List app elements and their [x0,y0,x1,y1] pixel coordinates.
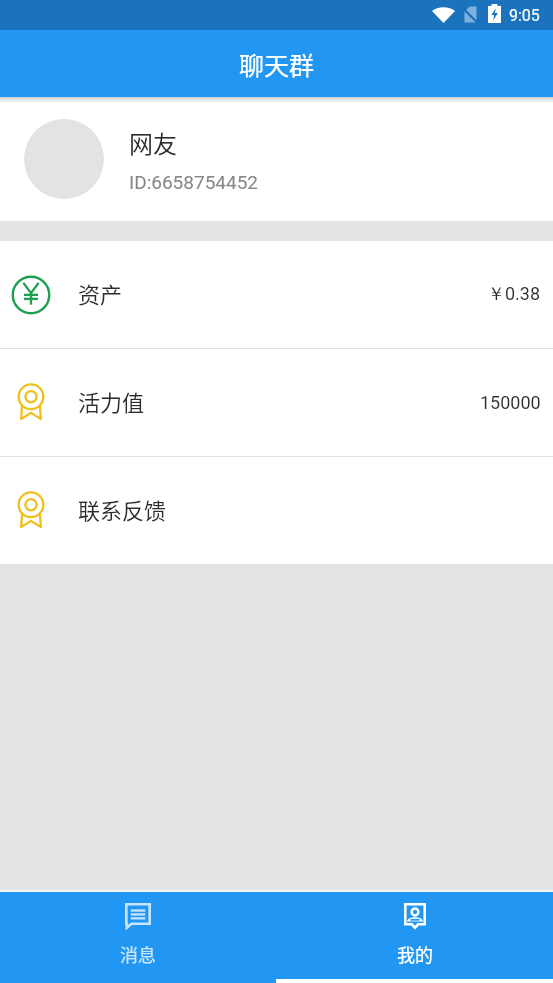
other: 消息 [125,903,151,929]
staticText: 我的 [397,941,433,967]
button[interactable]: 消息 [0,892,276,983]
staticText: ￥0.38 [487,283,541,306]
staticText: 活力值 [78,385,145,417]
staticText: 联系反馈 [78,493,167,525]
staticText: 消息 [120,941,156,967]
button[interactable]: 联系反馈 [0,457,553,564]
staticText: 9:05 [509,6,540,25]
staticText: 150000 [480,392,541,413]
staticText: 聊天群 [239,46,315,82]
button[interactable]: 活力值 [0,349,553,456]
button[interactable]: 资产 [0,241,553,348]
staticText: 网友 [129,125,177,160]
button[interactable]: 网友 [0,97,553,221]
staticText: ID:6658754452 [129,171,259,193]
staticText: 资产 [78,277,123,309]
other: 我的 [404,903,426,929]
button[interactable]: 我的 [276,892,553,983]
